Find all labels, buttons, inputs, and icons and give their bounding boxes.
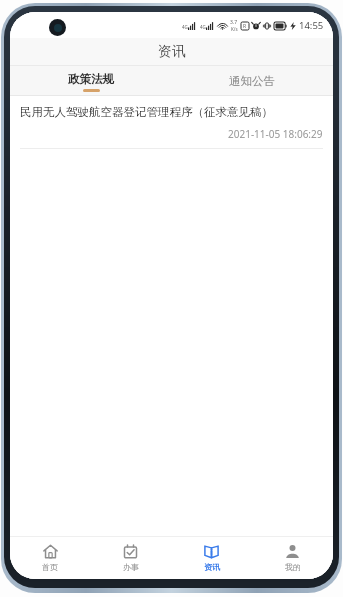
staticText: 政策法规 [68,72,114,86]
staticText: 资讯 [158,43,186,61]
staticText: 3.7 [230,19,238,26]
button[interactable]: 办事 [90,537,171,579]
button[interactable]: 资讯 [171,537,252,579]
staticText: R [243,23,247,30]
staticText: 通知公告 [229,74,275,88]
button[interactable]: 通知公告 [171,66,333,95]
button[interactable]: 我的 [252,537,333,579]
button[interactable]: 民用无人驾驶航空器登记管理程序（征求意见稿） [10,96,333,148]
staticText: 4G [182,24,188,30]
staticText: 办事 [123,562,139,572]
staticText: 4G [200,24,206,30]
button[interactable]: 首页 [10,537,90,579]
staticText: 资讯 [204,562,220,572]
staticText: 民用无人驾驶航空器登记管理程序（征求意见稿） [20,105,273,119]
staticText: 2021-11-05 18:06:29 [228,127,323,141]
staticText: 14:55 [299,19,324,32]
staticText: K/s [231,26,238,32]
staticText: 首页 [42,562,58,572]
staticText: 我的 [285,562,301,572]
button[interactable]: 政策法规 [10,66,171,95]
